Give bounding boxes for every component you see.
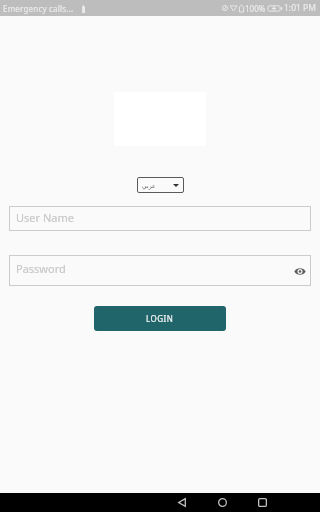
button[interactable]: Password — [9, 255, 311, 286]
button[interactable]: عربي — [137, 177, 184, 193]
staticText: 1:01 PM — [284, 2, 316, 14]
staticText: 100% — [245, 3, 266, 14]
staticText: Password — [16, 261, 66, 276]
button[interactable]: Home — [202, 493, 242, 512]
button[interactable]: Toggle password visibility — [292, 263, 308, 279]
staticText: LOGIN — [146, 313, 174, 324]
button[interactable]: User Name — [9, 206, 311, 231]
staticText: عربي — [142, 182, 156, 189]
button[interactable]: LOGIN — [94, 306, 226, 331]
staticText: Emergency calls... — [3, 3, 74, 14]
staticText: User Name — [16, 210, 74, 225]
button[interactable]: Back — [162, 493, 202, 512]
button[interactable]: Recent apps — [242, 493, 282, 512]
